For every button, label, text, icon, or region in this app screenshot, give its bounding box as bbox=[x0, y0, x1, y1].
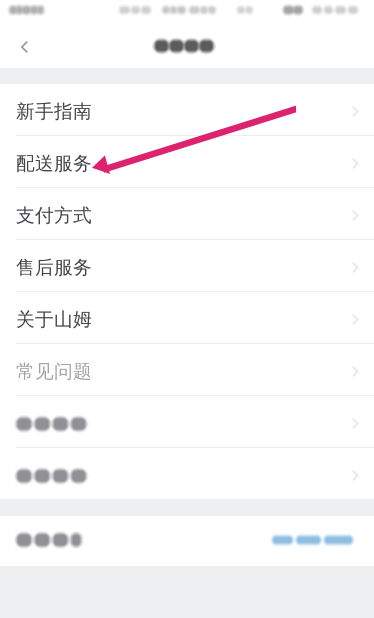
button[interactable]: 常见问题 bbox=[0, 344, 374, 395]
button[interactable]: 关于山姆 bbox=[0, 292, 374, 343]
button[interactable] bbox=[0, 516, 374, 566]
button[interactable] bbox=[0, 448, 374, 499]
staticText: 新手指南 bbox=[16, 100, 92, 123]
staticText: 售后服务 bbox=[16, 256, 92, 279]
button[interactable]: 售后服务 bbox=[0, 240, 374, 291]
staticText: 常见问题 bbox=[16, 360, 92, 383]
staticText: 关于山姆 bbox=[16, 308, 92, 331]
button[interactable] bbox=[0, 396, 374, 447]
button[interactable]: 新手指南 bbox=[0, 84, 374, 135]
staticText: 配送服务 bbox=[16, 152, 92, 175]
button[interactable]: Back bbox=[0, 26, 45, 68]
button[interactable]: 支付方式 bbox=[0, 188, 374, 239]
button[interactable]: 配送服务 bbox=[0, 136, 374, 187]
staticText: 支付方式 bbox=[16, 204, 92, 227]
